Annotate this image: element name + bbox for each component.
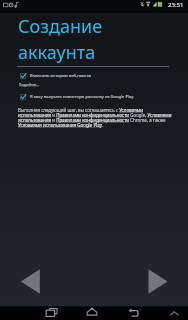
button[interactable]: Recent apps [44,306,60,320]
button[interactable]: Я хочу получать новостную рассылку из Go… [20,94,180,100]
staticText: Я хочу получать новостную рассылку из Go… [30,94,135,100]
button[interactable]: Back [127,306,143,320]
button[interactable]: Включить историю веб-поиска [20,73,180,79]
button[interactable]: Next [143,265,173,299]
staticText: Создание аккаунта [18,14,103,64]
staticText: 23:51 [168,1,184,9]
staticText: Включить историю веб-поиска [30,73,92,79]
button[interactable]: Подробнее… [19,83,39,87]
button[interactable]: Home [86,306,102,320]
button[interactable]: Previous [15,265,45,299]
staticText: Выполняя следующий шаг, вы соглашаетесь … [18,107,172,128]
button[interactable]: Expand [169,306,183,320]
